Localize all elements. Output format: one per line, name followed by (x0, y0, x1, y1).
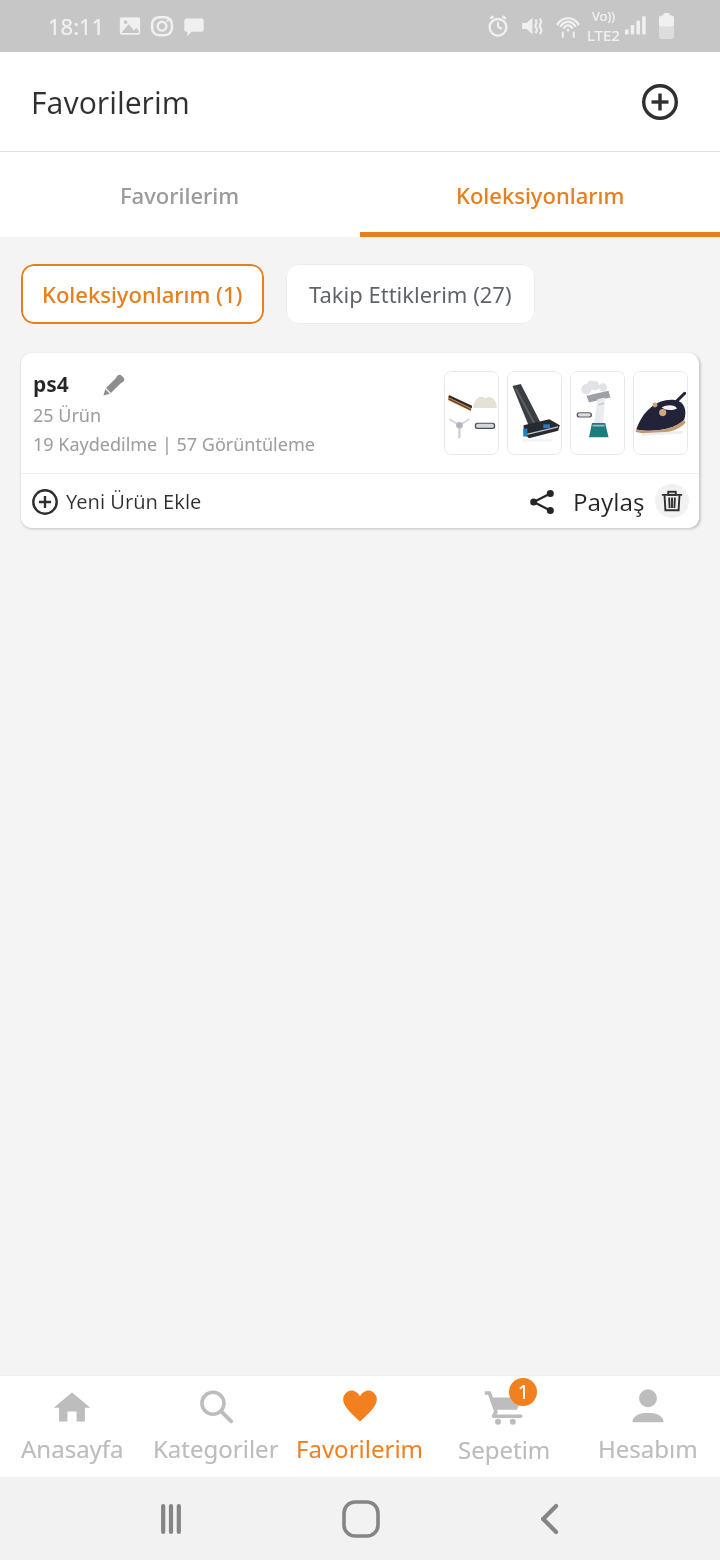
staticText: Anasayfa (21, 1432, 124, 1465)
staticText: Takip Ettiklerim (27) (309, 279, 512, 309)
staticText: Sepetim (458, 1433, 551, 1466)
button[interactable]: Paylaş (529, 479, 645, 524)
button[interactable]: Home (266, 1477, 455, 1560)
button[interactable]: 1 (432, 1375, 576, 1477)
staticText: 19 Kaydedilme | 57 Görüntüleme (33, 432, 315, 457)
button[interactable]: Favorilerim (0, 152, 360, 237)
staticText: Hesabım (598, 1432, 698, 1465)
button[interactable]: Recents (76, 1477, 266, 1560)
button[interactable]: Favorilerim (288, 1375, 432, 1477)
button[interactable]: Koleksiyonlarım (360, 152, 720, 237)
staticText: 1 (518, 1379, 529, 1405)
button[interactable]: Koleksiyonlarım (1) (21, 264, 264, 324)
staticText: ps4 (33, 370, 69, 399)
staticText: Paylaş (573, 485, 645, 518)
button[interactable]: Product (633, 371, 688, 455)
staticText: Kategoriler (153, 1432, 279, 1465)
button[interactable]: Edit collection name (99, 369, 129, 399)
button[interactable]: Anasayfa (0, 1375, 144, 1477)
staticText: Koleksiyonlarım (456, 180, 625, 210)
staticText: LTE2 (587, 25, 620, 45)
staticText: Koleksiyonlarım (1) (42, 279, 243, 309)
staticText: Favorilerim (120, 180, 240, 210)
button[interactable]: Kategoriler (144, 1375, 288, 1477)
staticText: Favorilerim (31, 82, 190, 123)
button[interactable]: Back (455, 1477, 644, 1560)
button[interactable]: Product (444, 371, 499, 455)
staticText: 18:11 (48, 11, 105, 41)
button[interactable]: Product (570, 371, 625, 455)
staticText: 25 Ürün (33, 403, 102, 428)
staticText: Favorilerim (296, 1432, 424, 1465)
button[interactable]: Hesabım (576, 1375, 720, 1477)
button[interactable]: Yeni Ürün Ekle (32, 482, 202, 521)
button[interactable]: Delete collection (655, 484, 689, 518)
staticText: Yeni Ürün Ekle (66, 488, 202, 515)
button[interactable]: Add collection (633, 75, 687, 129)
button[interactable]: Takip Ettiklerim (27) (286, 264, 535, 324)
button[interactable]: Product (507, 371, 562, 455)
staticText: Vo)) (592, 7, 616, 25)
